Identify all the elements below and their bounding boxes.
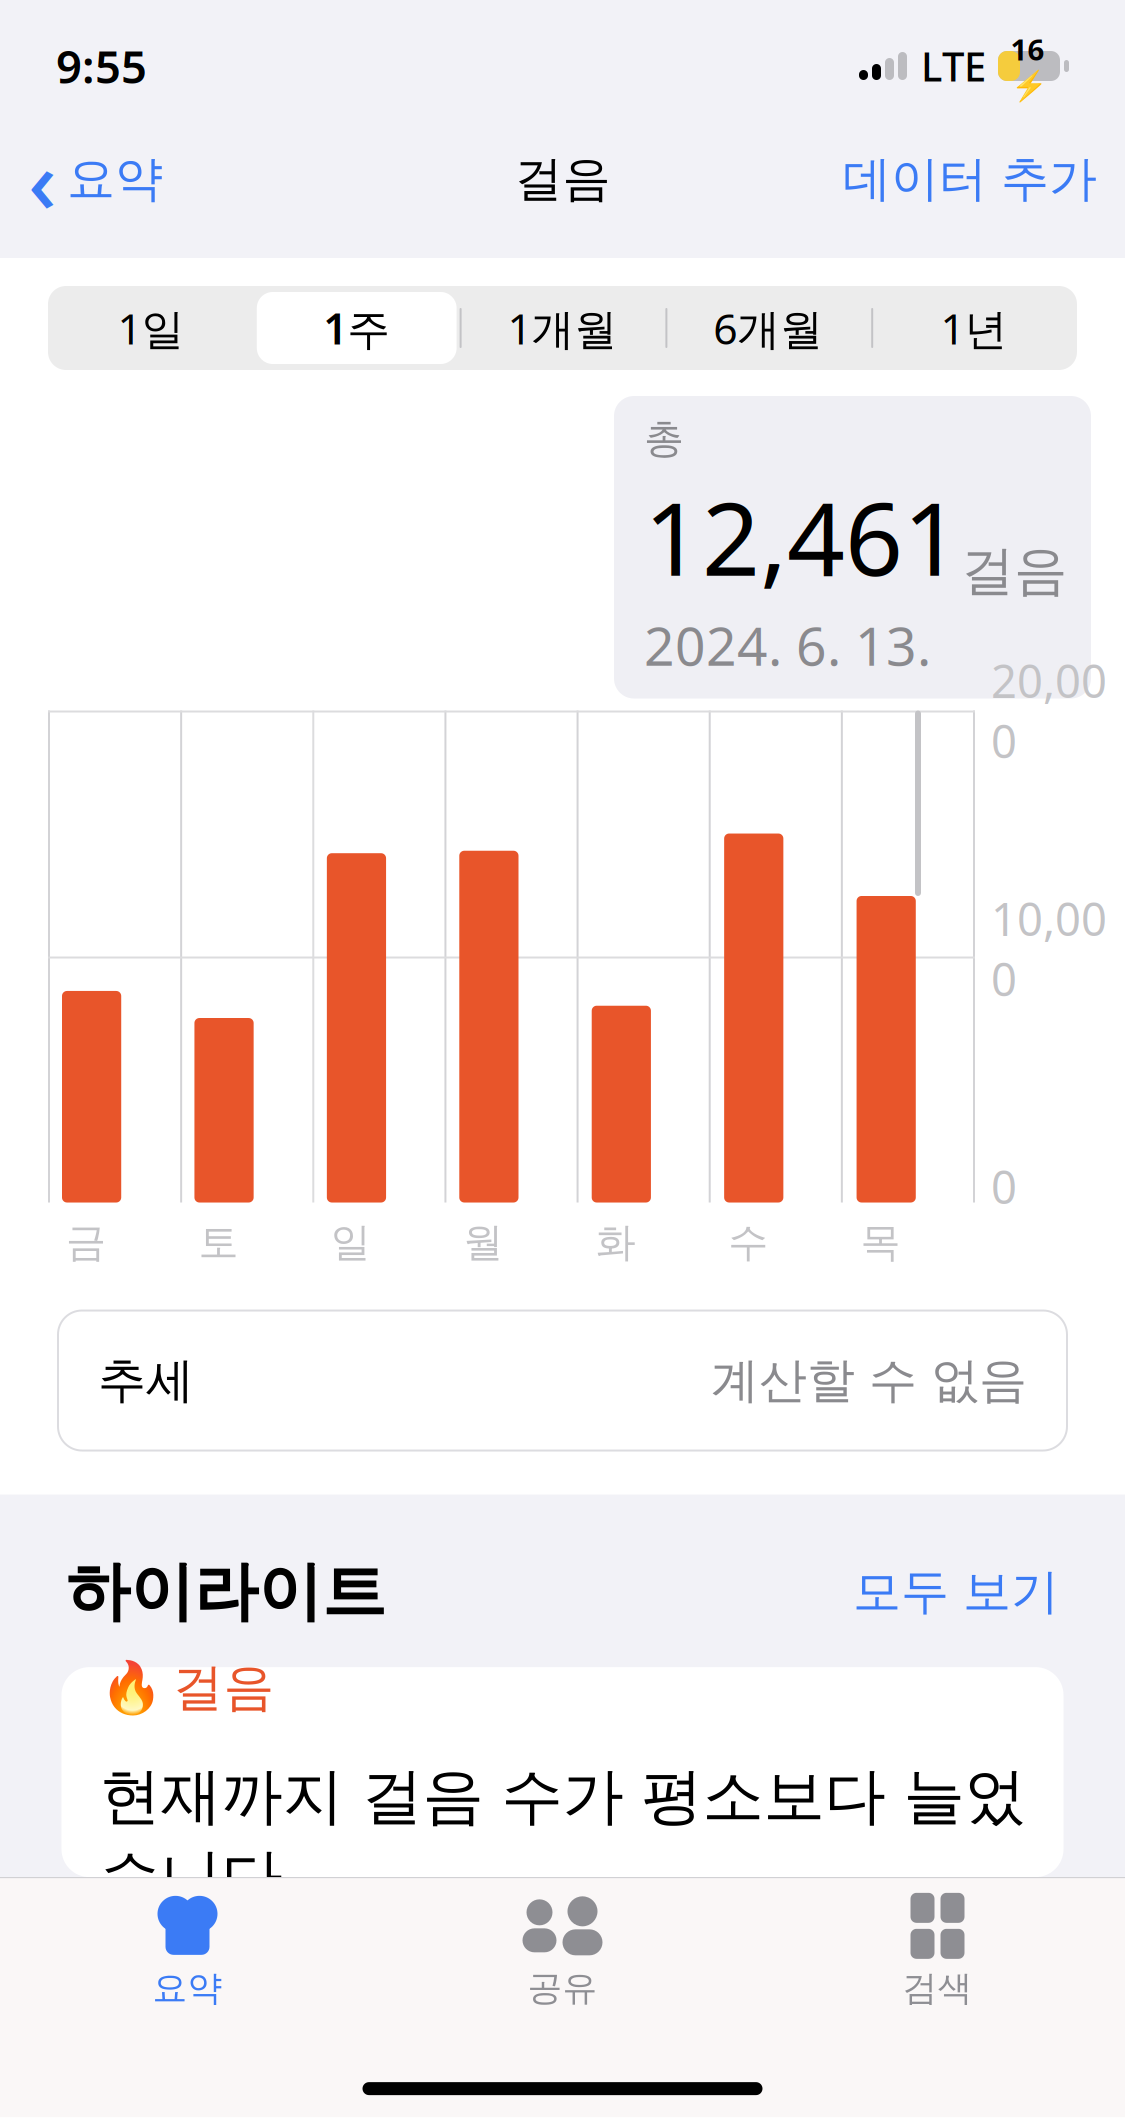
button[interactable]: 모두 보기 [853, 1562, 1059, 1621]
staticText: 화 [596, 1218, 636, 1267]
staticText: 1개월 [507, 300, 617, 356]
button[interactable]: 추세 [58, 1310, 1067, 1450]
button[interactable]: 검색 [750, 1878, 1125, 2016]
staticText: 공유 [527, 1967, 597, 2009]
staticText: 6개월 [713, 300, 823, 356]
staticText: 1년 [941, 300, 1008, 356]
staticText: 1일 [117, 300, 184, 356]
staticText: ‹ [28, 121, 57, 237]
staticText: 10,000 [991, 888, 1107, 1009]
button[interactable]: 요약 [0, 1878, 375, 2016]
button[interactable]: ‹ [0, 135, 191, 223]
button[interactable]: 6개월 [665, 286, 871, 370]
staticText: 금 [66, 1218, 106, 1267]
staticText: 걸음 [961, 538, 1067, 604]
staticText: 걸음 [172, 1657, 274, 1719]
button[interactable]: 1주 [254, 286, 460, 370]
button[interactable]: 1일 [48, 286, 254, 370]
staticText: 하이라이트 [66, 1552, 386, 1631]
staticText: 계산할 수 없음 [711, 1351, 1027, 1410]
staticText: 검색 [902, 1967, 972, 2009]
staticText: 요약 [67, 149, 163, 208]
staticText: 1주 [323, 300, 390, 356]
staticText: 토 [198, 1218, 238, 1267]
staticText: 총 [644, 414, 684, 463]
staticText: 일 [331, 1218, 371, 1267]
staticText: 9:55 [56, 36, 147, 96]
staticText: 12,461 [644, 469, 961, 604]
staticText: 요약 [152, 1967, 222, 2009]
staticText: 목 [861, 1218, 901, 1267]
staticText: 🔥 [99, 1659, 162, 1717]
button[interactable]: 데이터 추가 [815, 135, 1125, 223]
staticText: 20,000 [991, 650, 1107, 771]
staticText: 걸음 [514, 149, 610, 208]
staticText: 모두 보기 [853, 1562, 1059, 1621]
staticText: 0 [991, 1156, 1017, 1217]
staticText: 현재까지 걸음 수가 평소보다 늘었습니다. [99, 1759, 1025, 1916]
staticText: 수 [728, 1218, 768, 1267]
staticText: LTE [921, 39, 986, 92]
staticText: 16⚡ [1010, 30, 1047, 102]
button[interactable]: 1개월 [460, 286, 665, 370]
button[interactable]: 공유 [375, 1878, 750, 2016]
staticText: 월 [463, 1218, 503, 1267]
button[interactable]: 1년 [871, 286, 1077, 370]
staticText: 2024. 6. 13. [644, 610, 931, 680]
staticText: 데이터 추가 [843, 149, 1097, 208]
staticText: 추세 [98, 1351, 194, 1410]
